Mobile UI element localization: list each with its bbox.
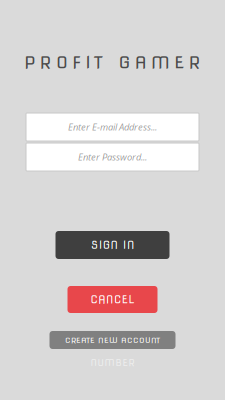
button[interactable]: CANCEL [67, 286, 157, 313]
staticText: Enter Password... [78, 151, 147, 163]
staticText: NUMBER [90, 357, 134, 368]
button[interactable]: CREATE NEW ACCOUNT [49, 331, 175, 349]
staticText: PROFIT GAMER [24, 51, 201, 72]
staticText: SIGN IN [91, 239, 134, 251]
staticText: Enter E-mail Address... [68, 121, 157, 133]
button[interactable]: SIGN IN [55, 231, 169, 259]
staticText: CREATE NEW ACCOUNT [65, 335, 160, 345]
staticText: CANCEL [90, 293, 134, 306]
